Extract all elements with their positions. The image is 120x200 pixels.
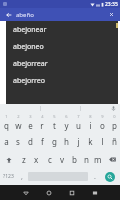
- button[interactable]: c: [43, 151, 56, 168]
- button[interactable]: m: [92, 151, 104, 168]
- staticText: e: [28, 120, 33, 131]
- button[interactable]: abejonear: [6, 21, 118, 38]
- staticText: abejorreo: [13, 76, 46, 86]
- button[interactable]: [81, 104, 120, 113]
- staticText: 1: [5, 114, 8, 119]
- staticText: 0: [113, 114, 116, 119]
- button[interactable]: b: [68, 151, 80, 168]
- staticText: t: [53, 120, 56, 131]
- staticText: u: [76, 120, 81, 131]
- staticText: abejorrear: [13, 59, 48, 69]
- button[interactable]: g: [48, 132, 60, 151]
- staticText: g: [52, 136, 57, 147]
- staticText: 5: [53, 114, 56, 119]
- staticText: 9: [101, 114, 104, 119]
- button[interactable]: abejorreo: [6, 72, 118, 89]
- staticText: p: [112, 120, 117, 131]
- button[interactable]: Back: [14, 185, 37, 200]
- staticText: 8: [89, 114, 92, 119]
- staticText: 2: [17, 114, 20, 119]
- button[interactable]: 7: [72, 113, 84, 132]
- staticText: o: [100, 120, 105, 131]
- button[interactable]: Voice input: [110, 105, 117, 112]
- staticText: 6: [65, 114, 68, 119]
- button[interactable]: Clear: [106, 9, 117, 20]
- staticText: k: [88, 136, 93, 147]
- staticText: 23:35: [105, 1, 118, 8]
- staticText: v: [60, 154, 65, 165]
- staticText: m: [94, 154, 102, 165]
- button[interactable]: f: [36, 132, 48, 151]
- button[interactable]: Comma: [16, 168, 27, 185]
- staticText: abeño: [16, 11, 106, 19]
- button[interactable]: 6: [60, 113, 72, 132]
- button[interactable]: 1: [0, 113, 12, 132]
- staticText: ,: [21, 172, 23, 182]
- button[interactable]: Screenshot: [83, 185, 106, 200]
- button[interactable]: v: [56, 151, 68, 168]
- staticText: d: [28, 136, 33, 147]
- button[interactable]: 3: [24, 113, 36, 132]
- button[interactable]: x: [30, 151, 43, 168]
- button[interactable]: 4: [36, 113, 48, 132]
- staticText: w: [15, 120, 22, 131]
- button[interactable]: Shift: [0, 151, 17, 168]
- staticText: 3: [29, 114, 32, 119]
- button[interactable]: Recents: [60, 185, 83, 200]
- button[interactable]: a: [0, 132, 12, 151]
- button[interactable]: h: [60, 132, 72, 151]
- staticText: l: [101, 136, 104, 147]
- staticText: j: [77, 136, 80, 147]
- button[interactable]: s: [12, 132, 24, 151]
- staticText: n: [84, 154, 89, 165]
- button[interactable]: z: [17, 151, 30, 168]
- staticText: f: [41, 136, 44, 147]
- button[interactable]: Search: [100, 168, 120, 185]
- button[interactable]: Backspace: [104, 151, 120, 168]
- button[interactable]: Home: [37, 185, 60, 200]
- button[interactable]: 0: [108, 113, 120, 132]
- staticText: y: [64, 120, 69, 131]
- staticText: q: [4, 120, 9, 131]
- button[interactable]: Period: [89, 168, 100, 185]
- staticText: abejonear: [13, 25, 47, 35]
- button[interactable]: ?123: [0, 168, 16, 185]
- staticText: a: [4, 136, 9, 147]
- button[interactable]: n: [80, 151, 92, 168]
- staticText: i: [89, 120, 92, 131]
- staticText: ?123: [3, 173, 14, 180]
- button[interactable]: ñ: [108, 132, 120, 151]
- button[interactable]: abejoneo: [6, 38, 118, 55]
- button[interactable]: 5: [48, 113, 60, 132]
- button[interactable]: l: [96, 132, 108, 151]
- staticText: b: [72, 154, 77, 165]
- staticText: .: [94, 172, 96, 182]
- button[interactable]: j: [72, 132, 84, 151]
- staticText: x: [34, 154, 39, 165]
- staticText: c: [48, 154, 52, 165]
- staticText: h: [64, 136, 69, 147]
- staticText: s: [16, 136, 20, 147]
- button[interactable]: k: [84, 132, 96, 151]
- button[interactable]: Back: [3, 9, 14, 20]
- staticText: 4: [41, 114, 44, 119]
- staticText: ñ: [112, 136, 117, 147]
- staticText: 7: [77, 114, 80, 119]
- button[interactable]: abejorrear: [6, 55, 118, 72]
- button[interactable]: d: [24, 132, 36, 151]
- button[interactable]: 8: [84, 113, 96, 132]
- staticText: r: [40, 120, 44, 131]
- button[interactable]: 9: [96, 113, 108, 132]
- staticText: abejoneo: [13, 42, 44, 52]
- staticText: z: [22, 154, 26, 165]
- button[interactable]: 2: [12, 113, 24, 132]
